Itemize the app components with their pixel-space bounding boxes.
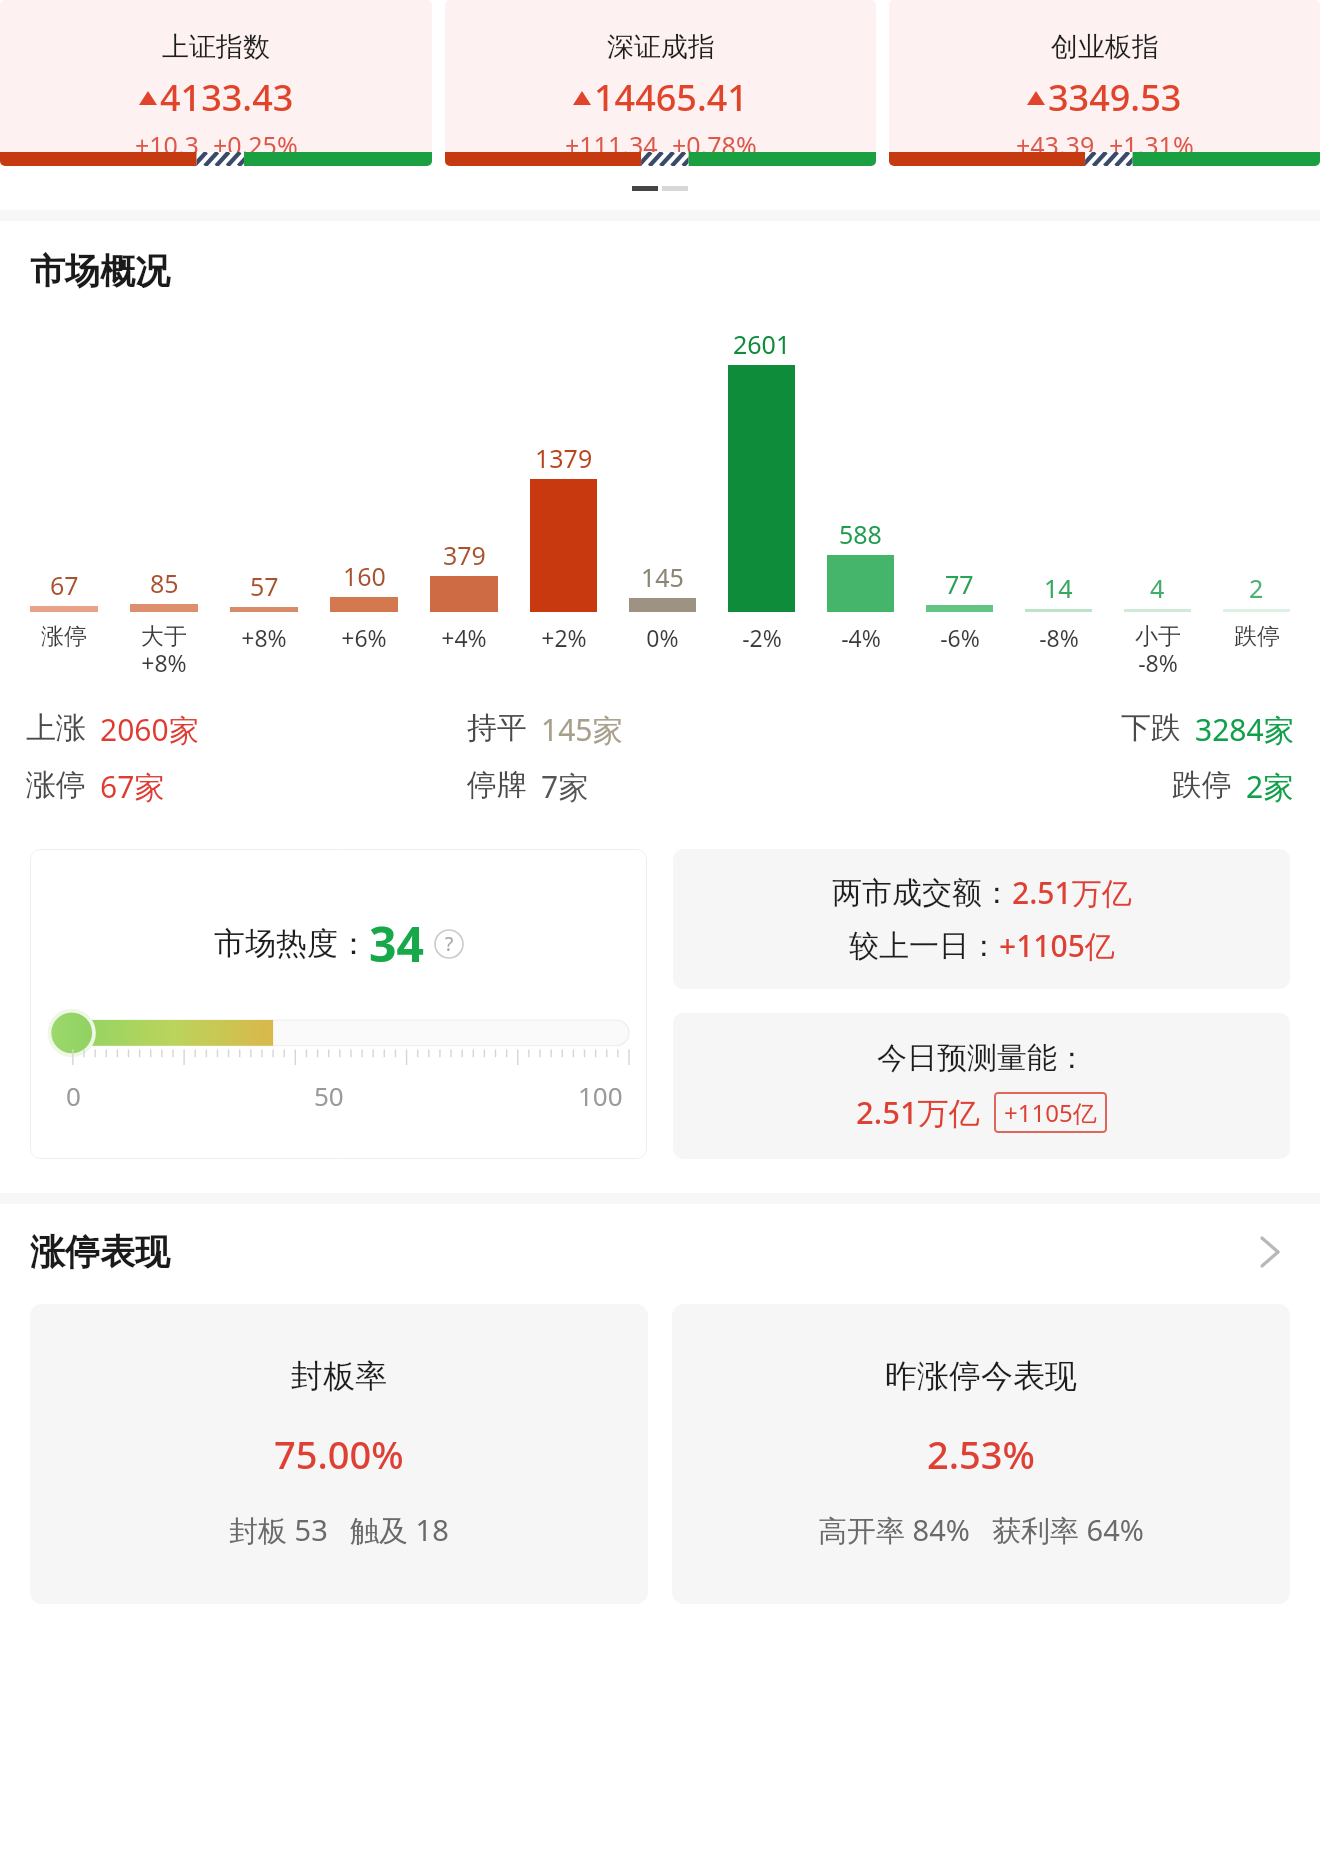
staticText: 0 [66,1078,81,1113]
staticText: 2.51万亿 [1012,872,1132,913]
staticText: -4% [841,622,881,653]
button[interactable]: 两市成交额： [673,849,1290,989]
staticText: 3349.53 [1048,73,1182,122]
staticText: -6% [940,622,980,653]
staticText: +8% [241,622,287,653]
button[interactable]: 上证指数 [0,0,432,166]
staticText: 2.51万亿 [856,1091,980,1133]
staticText: +6% [341,622,387,653]
staticText: 触及 18 [350,1510,449,1550]
staticText: 昨涨停今表现 [885,1356,1077,1396]
staticText: 100 [578,1078,623,1113]
staticText: 两市成交额： [832,874,1012,912]
staticText: 50 [314,1078,344,1113]
staticText: 57 [250,569,279,603]
staticText: 持平 [467,709,527,747]
staticText: 2.53% [927,1428,1035,1480]
staticText: +2% [541,622,587,653]
staticText: ? [445,931,454,957]
staticText: 4 [1150,571,1165,605]
staticText: +111.34 [565,128,658,162]
staticText: 跌停 [1172,766,1232,804]
staticText: -8% [1039,622,1079,653]
staticText: 小于 -8% [1135,622,1181,679]
staticText: 上证指数 [162,30,270,64]
staticText: 67 [50,568,79,602]
staticText: 涨停 [41,622,87,651]
staticText: 85 [150,566,179,600]
staticText: 77 [945,567,974,601]
staticText: 跌停 [1234,622,1280,651]
other: More [1250,1232,1290,1272]
staticText: 封板 53 [229,1510,328,1550]
staticText: 大于 +8% [141,622,187,679]
staticText: 145家 [541,709,623,750]
staticText: +1.31% [1109,128,1194,162]
staticText: +43.39 [1016,128,1095,162]
staticText: 145 [641,560,684,594]
staticText: 34 [369,911,424,976]
staticText: +1105亿 [1004,1096,1097,1129]
staticText: 75.00% [274,1428,404,1480]
staticText: 涨停表现 [30,1230,170,1274]
staticText: 2601 [733,327,791,361]
staticText: 下跌 [1121,709,1181,747]
staticText: +0.25% [213,128,298,162]
staticText: +0.78% [672,128,757,162]
staticText: 2家 [1246,766,1294,807]
staticText: 14 [1044,571,1073,605]
staticText: 379 [443,538,486,572]
staticText: 0% [646,622,679,653]
staticText: 14465.41 [594,73,748,122]
button[interactable]: 创业板指 [889,0,1320,166]
staticText: 高开率 84% [818,1510,970,1550]
staticText: 2060家 [100,709,199,750]
staticText: 3284家 [1195,709,1294,750]
staticText: -2% [742,622,782,653]
button[interactable]: 封板率 [30,1304,648,1604]
button[interactable]: 市场热度： [30,849,647,1159]
button[interactable]: 深证成指 [445,0,876,166]
staticText: 上涨 [26,709,86,747]
staticText: 市场概况 [30,249,170,293]
staticText: 创业板指 [1051,30,1159,64]
button[interactable]: 涨停表现 [0,1230,1320,1274]
staticText: 4133.43 [160,73,294,122]
staticText: 160 [343,559,386,593]
button[interactable]: 今日预测量能： [673,1013,1290,1159]
staticText: +1105亿 [999,925,1115,966]
staticText: 深证成指 [607,30,715,64]
staticText: 涨停 [26,766,86,804]
staticText: 2 [1249,571,1264,605]
staticText: 今日预测量能： [877,1039,1087,1077]
button[interactable]: 昨涨停今表现 [672,1304,1290,1604]
button[interactable]: Help [434,929,464,959]
staticText: 停牌 [467,766,527,804]
staticText: +4% [441,622,487,653]
staticText: 获利率 64% [992,1510,1144,1550]
staticText: 市场热度： [214,924,369,963]
staticText: 1379 [535,441,593,475]
staticText: +10.3 [135,128,199,162]
staticText: 较上一日： [849,927,999,965]
staticText: 封板率 [291,1356,387,1396]
staticText: 67家 [100,766,165,807]
staticText: 588 [839,517,882,551]
staticText: 7家 [541,766,589,807]
